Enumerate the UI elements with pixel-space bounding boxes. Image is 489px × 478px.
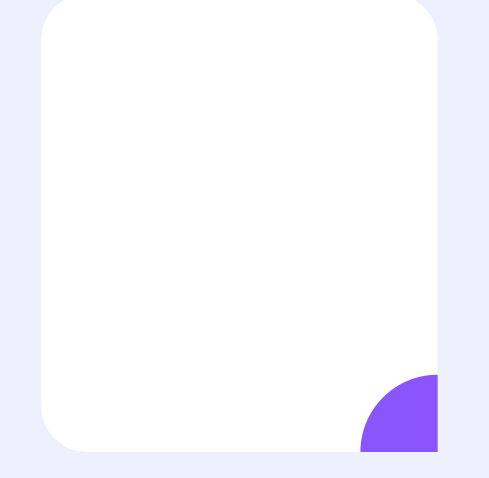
button[interactable]: Continue <box>360 375 438 452</box>
